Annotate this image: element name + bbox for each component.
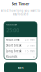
button[interactable]: Rounds <box>4 54 37 59</box>
button[interactable]: Short break <box>4 43 37 48</box>
staticText: 25:00 <box>6 27 19 34</box>
staticText: stay focused <box>12 12 28 16</box>
staticText: Short break <box>6 44 21 47</box>
staticText: Select how long you want to <box>0 9 40 12</box>
staticText: FOCUS SESSION <box>6 24 17 26</box>
staticText: Focus time <box>6 38 20 42</box>
staticText: 25 min <box>25 38 35 42</box>
staticText: Long break <box>6 49 21 53</box>
button[interactable]: Long break <box>4 48 37 54</box>
staticText: Set Timer <box>11 1 29 6</box>
staticText: Start <box>17 66 23 69</box>
staticText: 4 <box>33 55 35 58</box>
staticText: Rounds <box>6 55 17 58</box>
button[interactable]: Start <box>4 62 37 72</box>
button[interactable]: Focus time <box>4 37 37 42</box>
staticText: 15 min <box>25 49 35 53</box>
staticText: 5 min <box>27 44 35 47</box>
